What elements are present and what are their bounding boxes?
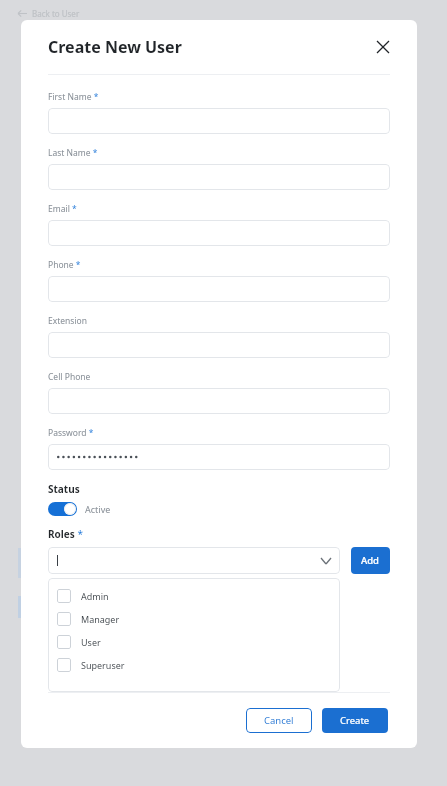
button[interactable]: Create	[322, 708, 388, 733]
button[interactable]: Manager	[48, 607, 340, 630]
staticText: User	[81, 636, 101, 648]
button[interactable]	[48, 547, 340, 574]
staticText: Manager	[81, 613, 120, 625]
staticText: Add	[361, 554, 380, 567]
staticText: Extension	[48, 315, 87, 327]
staticText: First Name *	[48, 91, 99, 103]
button[interactable]: Cancel	[246, 708, 312, 733]
button[interactable]: Superuser	[48, 653, 340, 676]
staticText: Create New User	[48, 36, 182, 58]
button[interactable]	[48, 444, 390, 470]
button[interactable]	[48, 388, 390, 414]
staticText: Active	[85, 503, 111, 515]
staticText: Password *	[48, 427, 94, 439]
button[interactable]	[48, 220, 390, 246]
staticText: Last Name *	[48, 147, 98, 159]
staticText: Email *	[48, 203, 77, 215]
staticText: Create	[340, 714, 370, 727]
staticText: Cell Phone	[48, 371, 91, 383]
button[interactable]: Close	[370, 34, 396, 60]
staticText: Cancel	[264, 714, 294, 727]
button[interactable]: Admin	[48, 584, 340, 607]
staticText: Status	[48, 482, 80, 496]
button[interactable]	[48, 276, 390, 302]
staticText: Roles *	[48, 527, 83, 541]
button[interactable]: User	[48, 630, 340, 653]
staticText: Phone *	[48, 259, 81, 271]
button[interactable]	[48, 332, 390, 358]
staticText: Admin	[81, 590, 109, 602]
button[interactable]	[48, 108, 390, 134]
staticText: Superuser	[81, 659, 125, 671]
staticText: Back to User	[32, 8, 80, 19]
button[interactable]: Add	[351, 547, 390, 574]
button[interactable]: Active	[48, 502, 111, 516]
button[interactable]	[48, 164, 390, 190]
